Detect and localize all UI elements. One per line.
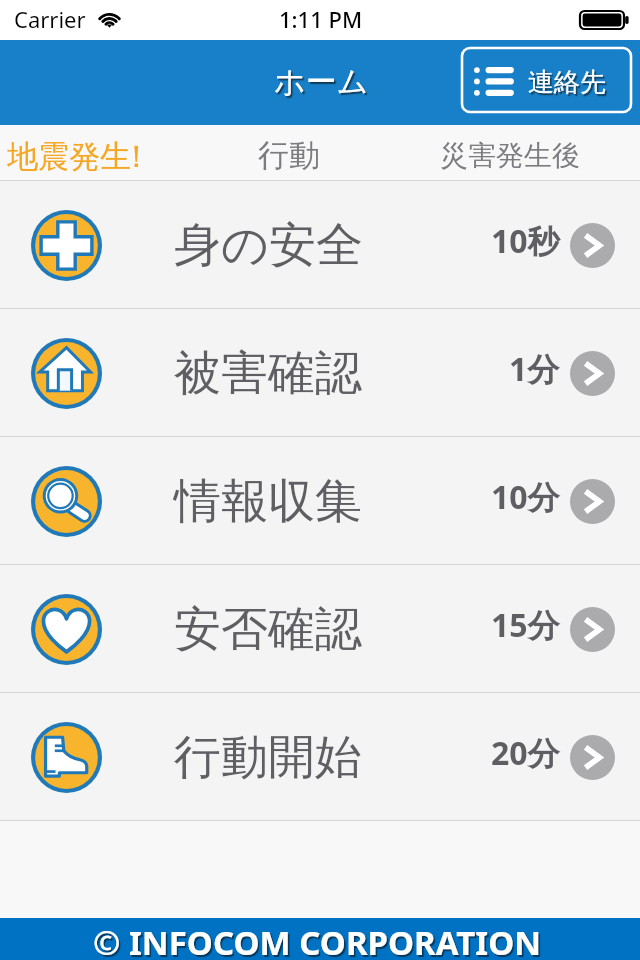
staticText: 地震発生	[7, 137, 131, 176]
staticText: 15分	[491, 603, 560, 647]
staticText: 安否確認	[174, 600, 362, 659]
staticText: 行動開始	[174, 728, 362, 787]
staticText: 10分	[491, 475, 560, 519]
button[interactable]: 災害発生後	[365, 126, 640, 181]
staticText: ホーム	[274, 62, 369, 101]
staticText: 行動	[258, 136, 320, 175]
button[interactable]: 身の安全 10秒	[0, 181, 640, 309]
staticText: 身の安全	[174, 216, 364, 275]
staticText: 10秒	[491, 219, 560, 263]
staticText: Carrier	[14, 4, 86, 34]
button[interactable]: 地震発生	[0, 126, 215, 181]
staticText: ！	[121, 137, 152, 176]
button[interactable]: 情報収集 10分	[0, 437, 640, 565]
staticText: 災害発生後	[440, 138, 580, 173]
button[interactable]: 行動	[215, 126, 365, 181]
staticText: © INFOCOM CORPORATION	[93, 920, 542, 960]
staticText: 被害確認	[174, 344, 362, 403]
staticText: 20分	[491, 731, 560, 775]
button[interactable]: 連絡先	[462, 48, 631, 112]
button[interactable]: 安否確認 15分	[0, 565, 640, 693]
button[interactable]: 行動開始 20分	[0, 693, 640, 821]
staticText: 1:11 PM	[279, 4, 363, 34]
staticText: 連絡先	[528, 66, 606, 99]
staticText: 情報収集	[174, 472, 362, 531]
staticText: 1分	[509, 347, 560, 391]
button[interactable]: 被害確認 1分	[0, 309, 640, 437]
